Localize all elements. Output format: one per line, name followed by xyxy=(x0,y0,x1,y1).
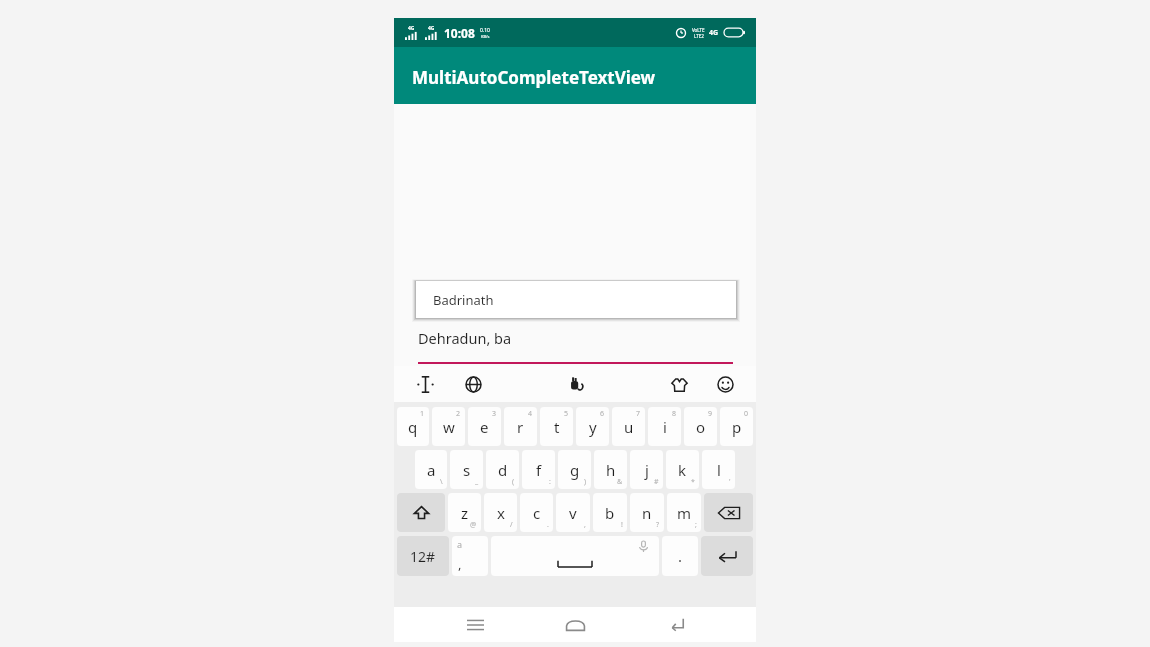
button[interactable]: Shift xyxy=(397,493,445,532)
button[interactable]: f xyxy=(522,450,555,489)
button[interactable]: t xyxy=(540,407,573,446)
button[interactable]: Space xyxy=(491,536,659,576)
staticText: s xyxy=(463,460,471,480)
staticText: \ xyxy=(440,477,443,487)
button[interactable]: Dehradun, ba xyxy=(418,328,733,364)
button[interactable]: w xyxy=(432,407,465,446)
staticText: ; xyxy=(695,520,697,530)
staticText: 0.10 xyxy=(480,27,490,34)
button[interactable]: m xyxy=(667,493,701,532)
staticText: ! xyxy=(621,520,623,530)
staticText: VoLTE xyxy=(692,27,705,33)
button[interactable]: r xyxy=(504,407,537,446)
staticText: ) xyxy=(584,477,587,487)
staticText: t xyxy=(554,417,560,437)
staticText: . xyxy=(547,520,549,530)
button[interactable]: y xyxy=(576,407,609,446)
button[interactable]: Badrinath xyxy=(416,281,736,318)
staticText: ? xyxy=(656,520,660,530)
staticText: Dehradun, ba xyxy=(418,328,512,348)
button[interactable]: z xyxy=(448,493,481,532)
staticText: 6 xyxy=(600,409,605,419)
staticText: f xyxy=(536,460,542,480)
staticText: 12# xyxy=(410,547,436,566)
staticText: e xyxy=(480,417,489,437)
staticText: z xyxy=(461,503,469,523)
staticText: y xyxy=(589,417,597,437)
staticText: 3 xyxy=(492,409,497,419)
staticText: 0 xyxy=(744,409,749,419)
staticText: & xyxy=(617,477,623,487)
staticText: 2 xyxy=(456,409,461,419)
staticText: o xyxy=(696,417,706,437)
staticText: , xyxy=(458,555,462,573)
staticText: j xyxy=(645,460,649,480)
staticText: c xyxy=(533,503,541,523)
button[interactable]: c xyxy=(520,493,553,532)
staticText: m xyxy=(677,503,692,523)
staticText: : xyxy=(549,477,551,487)
staticText: p xyxy=(732,417,742,437)
button[interactable]: o xyxy=(684,407,717,446)
button[interactable]: l xyxy=(702,450,735,489)
staticText: / xyxy=(510,520,513,530)
staticText: r xyxy=(517,417,524,437)
staticText: q xyxy=(408,417,418,437)
staticText: _ xyxy=(475,477,479,487)
staticText: b xyxy=(605,503,615,523)
staticText: k xyxy=(678,460,687,480)
staticText: g xyxy=(570,460,580,480)
staticText: Badrinath xyxy=(433,291,494,309)
staticText: @ xyxy=(470,520,477,530)
button[interactable]: 12# xyxy=(397,536,449,576)
button[interactable]: Text cursor xyxy=(412,371,438,397)
button[interactable]: g xyxy=(558,450,591,489)
button[interactable]: n xyxy=(630,493,664,532)
staticText: ' xyxy=(729,477,731,487)
button[interactable]: d xyxy=(486,450,519,489)
staticText: h xyxy=(606,460,616,480)
button[interactable]: Enter xyxy=(701,536,753,576)
staticText: w xyxy=(443,417,455,437)
staticText: 4 xyxy=(528,409,533,419)
button[interactable]: Emoji xyxy=(712,371,738,397)
button[interactable]: j xyxy=(630,450,663,489)
button[interactable]: Theme xyxy=(666,371,692,397)
staticText: , xyxy=(584,520,586,530)
button[interactable]: h xyxy=(594,450,627,489)
staticText: n xyxy=(642,503,652,523)
button[interactable]: i xyxy=(648,407,681,446)
button[interactable]: b xyxy=(593,493,627,532)
staticText: a xyxy=(457,538,463,550)
staticText: ( xyxy=(512,477,515,487)
button[interactable]: q xyxy=(397,407,429,446)
staticText: 10:08 xyxy=(444,25,475,41)
staticText: 5 xyxy=(564,409,569,419)
button[interactable]: Clipboard xyxy=(563,371,589,397)
staticText: l xyxy=(717,460,721,480)
button[interactable]: . xyxy=(662,536,698,576)
button[interactable]: Back xyxy=(656,607,696,642)
button[interactable]: k xyxy=(666,450,699,489)
staticText: 7 xyxy=(636,409,641,419)
staticText: d xyxy=(498,460,508,480)
staticText: u xyxy=(624,417,634,437)
staticText: KB/s xyxy=(481,34,490,39)
button[interactable]: s xyxy=(450,450,483,489)
button[interactable]: e xyxy=(468,407,501,446)
button[interactable]: Recents xyxy=(455,607,495,642)
staticText: v xyxy=(569,503,577,523)
button[interactable]: v xyxy=(556,493,590,532)
button[interactable]: a xyxy=(415,450,447,489)
button[interactable]: Language xyxy=(460,371,486,397)
button[interactable]: Home xyxy=(555,607,595,642)
staticText: . xyxy=(678,546,683,566)
button[interactable]: a xyxy=(452,536,488,576)
button[interactable]: p xyxy=(720,407,753,446)
button[interactable]: Backspace xyxy=(704,493,753,532)
button[interactable]: u xyxy=(612,407,645,446)
staticText: 1 xyxy=(420,409,425,419)
button[interactable]: x xyxy=(484,493,517,532)
staticText: # xyxy=(654,477,659,487)
staticText: MultiAutoCompleteTextView xyxy=(412,66,656,89)
